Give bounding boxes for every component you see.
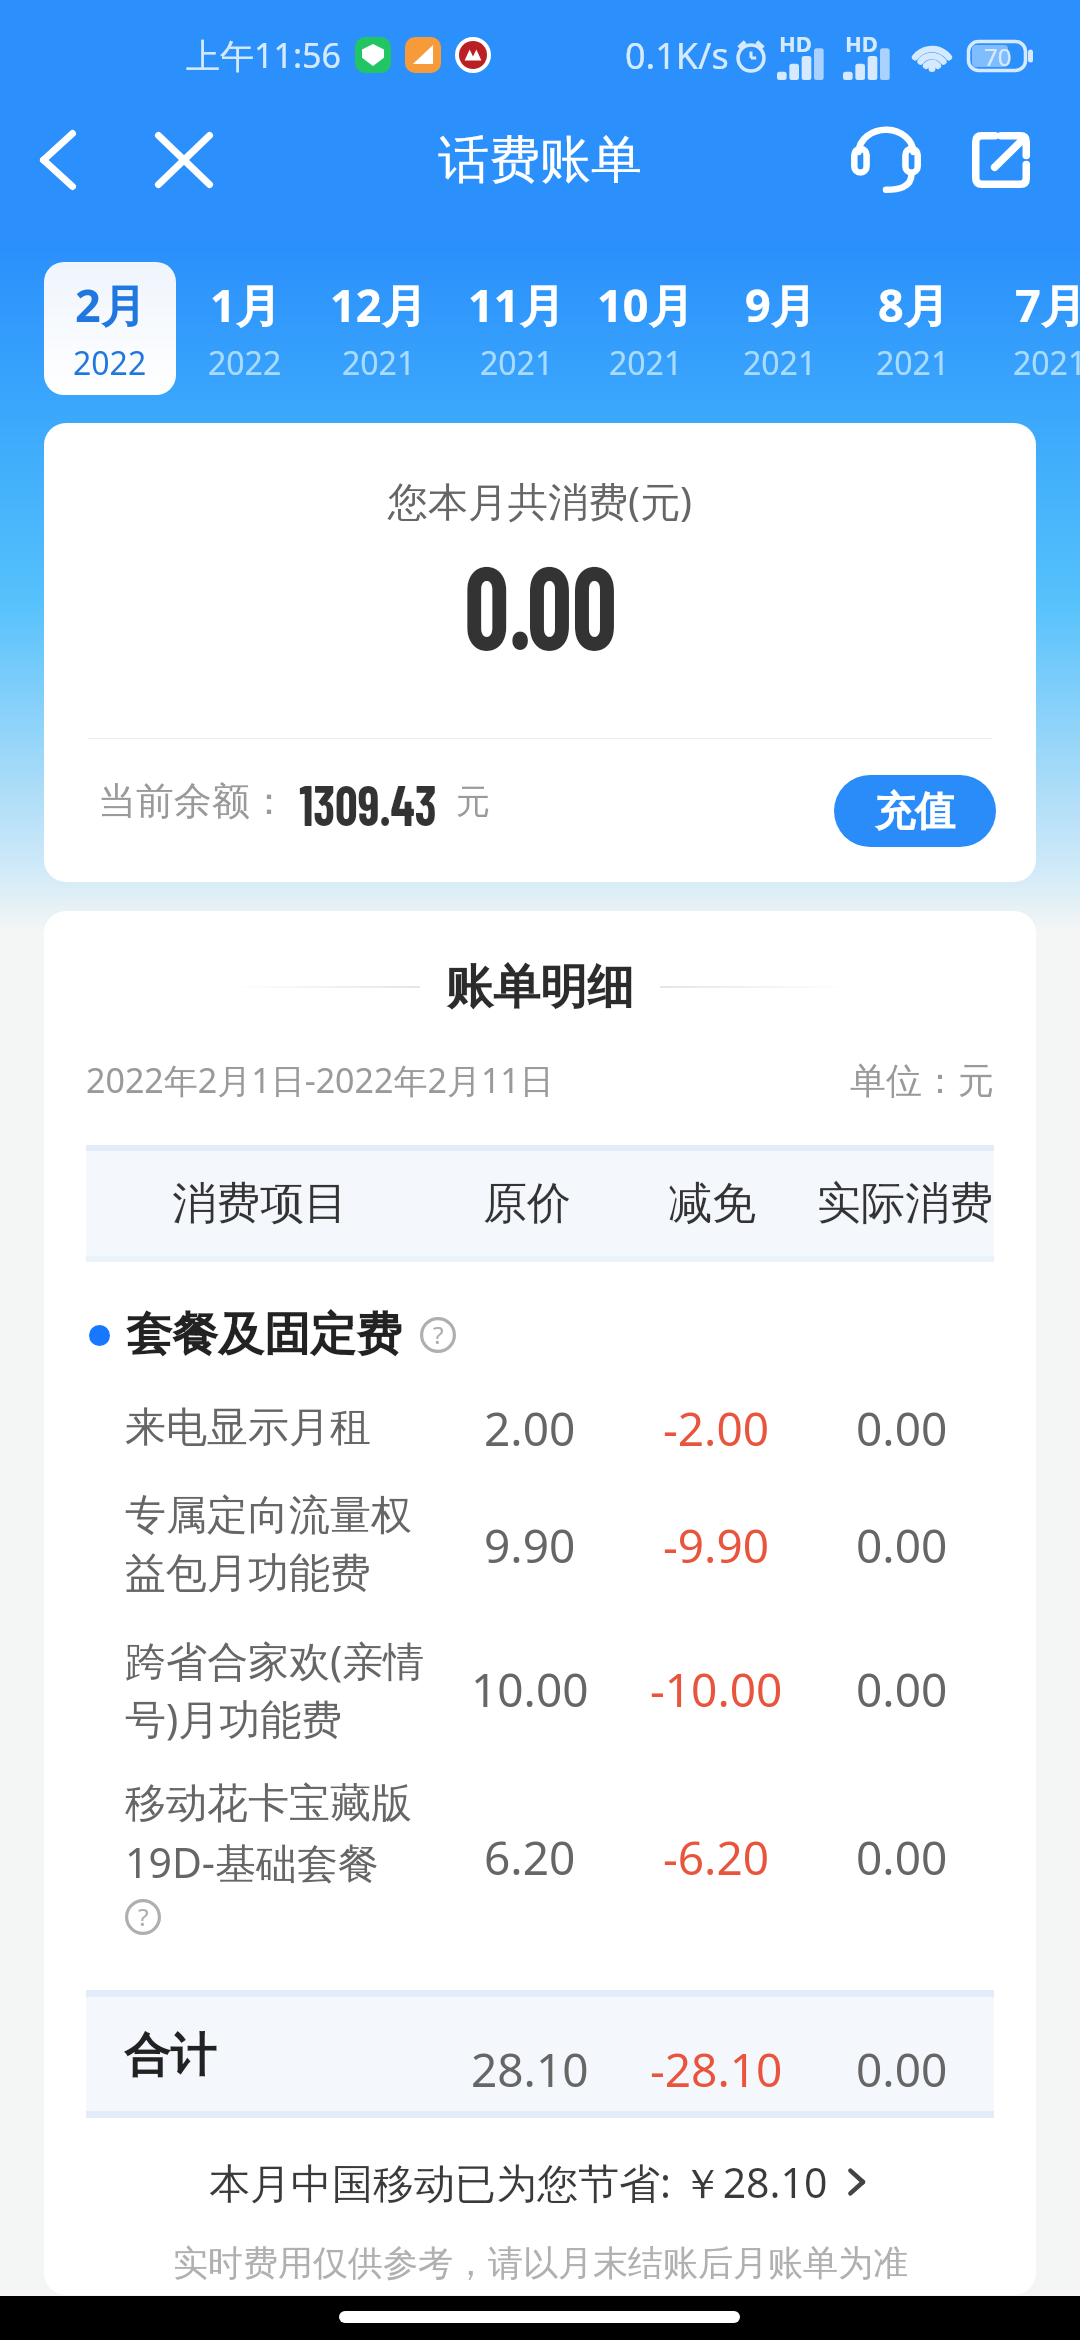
staticText: 0.00 [856,1658,948,1721]
staticText: ? [138,1900,149,1933]
staticText: 套餐及固定费 [126,1306,402,1364]
staticText: HD [845,28,878,58]
button[interactable]: 9月 [712,262,848,395]
staticText: 本月中国移动已为您节省: ￥28.10 [209,2154,828,2210]
staticText: 28.10 [471,2038,589,2101]
staticText: 0.1K/s [625,31,729,80]
staticText: 2021 [609,341,683,385]
staticText: 2021 [480,341,554,385]
button[interactable]: 1月 [177,262,313,395]
staticText: 2021 [342,341,416,385]
staticText: 2.00 [484,1397,576,1460]
staticText: 7月 [1015,274,1080,335]
staticText: 2021 [1013,341,1080,385]
staticText: ? [433,1318,444,1351]
button[interactable]: 充值 [834,775,996,847]
button[interactable]: 11月 [448,262,584,395]
staticText: 10.00 [471,1658,589,1721]
button[interactable]: Back [16,118,100,202]
staticText: 跨省合家欢(亲情 [125,1632,425,1688]
staticText: 2月 [75,274,146,335]
staticText: 19D-基础套餐 [125,1834,380,1890]
staticText: 实时费用仅供参考，请以月末结账后月账单为准 [173,2241,908,2285]
staticText: 单位：元 [850,1058,994,1103]
staticText: 原价 [483,1176,571,1231]
button[interactable]: 8月 [845,262,981,395]
button[interactable]: 10月 [577,262,713,395]
staticText: 2021 [743,341,817,385]
button[interactable]: 本月中国移动已为您节省: ￥28.10 [44,2146,1036,2218]
staticText: 2021 [876,341,950,385]
staticText: 实际消费 [817,1176,993,1231]
staticText: 充值 [875,786,955,836]
staticText: 账单明细 [446,958,634,1017]
staticText: 减免 [668,1176,756,1231]
staticText: 专属定向流量权 [125,1490,412,1542]
staticText: -28.10 [650,2038,783,2101]
staticText: 0.00 [856,1514,948,1577]
staticText: 1309.43 [299,768,437,834]
staticText: 元 [456,780,490,823]
button[interactable]: 2月 [44,262,176,395]
staticText: -10.00 [650,1658,783,1721]
staticText: 当前余额： [98,777,288,825]
staticText: 6.20 [484,1826,576,1889]
staticText: 12月 [330,274,427,335]
staticText: 号)月功能费 [125,1690,343,1746]
staticText: 2022 [208,341,282,385]
staticText: 0.00 [856,1397,948,1460]
staticText: 10月 [597,274,694,335]
button[interactable]: 7月 [982,262,1080,395]
staticText: 8月 [878,274,949,335]
staticText: -9.90 [663,1514,770,1577]
staticText: 1月 [210,274,281,335]
staticText: 2022 [73,341,147,385]
staticText: 上午11:56 [186,32,341,78]
staticText: 0.00 [464,534,617,654]
staticText: 移动花卡宝藏版 [125,1778,412,1830]
staticText: 0.00 [856,2038,948,2101]
staticText: 2022年2月1日-2022年2月11日 [86,1057,554,1103]
staticText: 11月 [468,274,565,335]
staticText: 70 [984,40,1012,72]
button[interactable]: Close [142,118,226,202]
staticText: 合计 [124,2027,216,2085]
button[interactable]: Customer service [844,118,928,202]
staticText: 9.90 [484,1514,576,1577]
staticText: 您本月共消费(元) [388,473,692,528]
staticText: -6.20 [663,1826,770,1889]
staticText: 9月 [745,274,816,335]
button[interactable]: Share [959,118,1043,202]
staticText: 来电显示月租 [125,1402,371,1454]
staticText: 益包月功能费 [125,1548,371,1600]
staticText: 话费账单 [438,128,642,192]
staticText: -2.00 [663,1397,770,1460]
button[interactable]: 12月 [310,262,446,395]
staticText: 0.00 [856,1826,948,1889]
staticText: 消费项目 [172,1176,348,1231]
staticText: HD [779,28,812,58]
